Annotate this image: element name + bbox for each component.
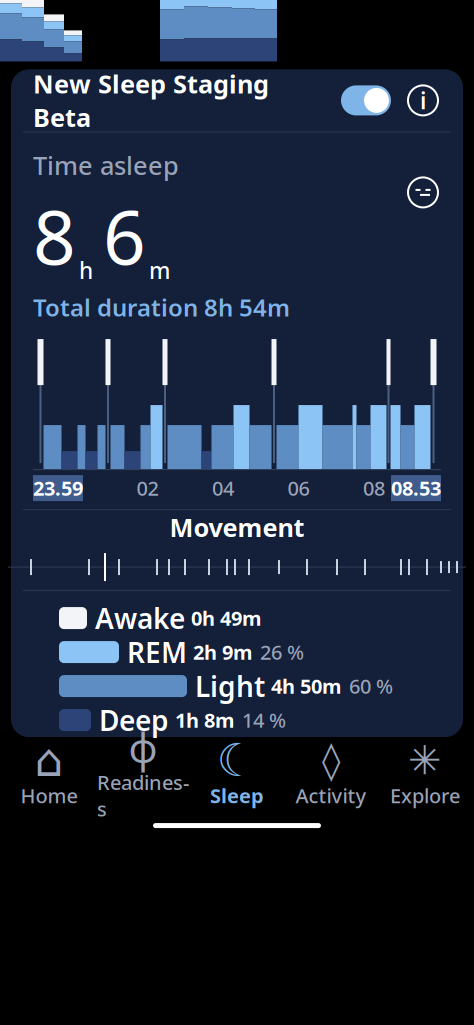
button[interactable]: ◊ [284, 745, 378, 807]
staticText: Explore [390, 782, 460, 809]
button[interactable]: Chart settings [405, 174, 441, 210]
staticText: 26 % [260, 639, 304, 665]
staticText: ◊ [322, 739, 340, 781]
staticText: 04 [212, 475, 234, 501]
staticText: 06 [287, 475, 309, 501]
button[interactable]: ϕ [96, 745, 190, 807]
staticText: 08 [363, 475, 385, 501]
staticText: 02 [136, 475, 158, 501]
staticText: ☾ [216, 735, 257, 786]
staticText: 2h 9m [193, 639, 253, 665]
staticText: 6 [103, 186, 146, 285]
staticText: 0h 49m [191, 605, 262, 631]
staticText: New Sleep Staging Beta [33, 67, 269, 134]
staticText: 8 [33, 186, 76, 285]
staticText: Deep [99, 701, 169, 739]
staticText: m [149, 255, 170, 285]
staticText: Home [20, 782, 77, 809]
staticText: Readiness [97, 769, 189, 822]
staticText: ϕ [128, 720, 157, 774]
staticText: Movement [169, 510, 304, 544]
staticText: 60 % [349, 673, 393, 699]
staticText: 1h 8m [175, 707, 235, 733]
button[interactable]: ☾ [190, 745, 284, 807]
staticText: 08.53 [391, 475, 441, 501]
staticText: Activity [295, 782, 366, 809]
staticText: 23.59 [33, 475, 83, 501]
staticText: ✳ [408, 738, 442, 783]
button[interactable]: ⌂ [2, 745, 96, 807]
button[interactable]: ✳ [378, 745, 472, 807]
button[interactable]: New Sleep Staging Beta toggle [341, 84, 391, 116]
staticText: i [420, 85, 426, 115]
staticText: 4h 50m [271, 673, 342, 699]
staticText: h [79, 255, 93, 285]
staticText: 14 % [242, 707, 286, 733]
staticText: Total duration 8h 54m [33, 291, 290, 323]
staticText: Light [195, 667, 265, 705]
button[interactable]: Information [405, 82, 441, 118]
staticText: Time asleep [33, 148, 179, 182]
staticText: Sleep [210, 782, 264, 809]
staticText: Awake [95, 599, 185, 637]
staticText: ⌂ [34, 735, 63, 786]
staticText: REM [127, 633, 187, 671]
